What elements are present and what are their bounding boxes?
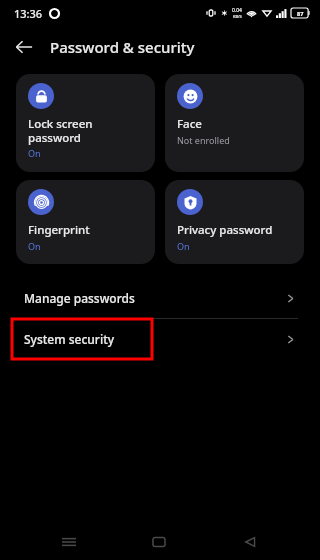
button[interactable]: Recents	[48, 524, 90, 560]
staticText: On	[177, 240, 190, 252]
staticText: 87	[297, 10, 304, 17]
staticText: Manage passwords	[24, 290, 135, 306]
staticText: Not enrolled	[177, 134, 230, 146]
staticText: Lock screen password	[28, 116, 93, 145]
button[interactable]: Privacy password	[165, 180, 304, 264]
staticText: Privacy password	[177, 222, 273, 238]
button[interactable]: Back	[229, 524, 271, 560]
button[interactable]: System security	[0, 319, 320, 359]
staticText: On	[28, 240, 41, 252]
staticText: Face	[177, 116, 202, 132]
staticText: 0.04	[232, 7, 242, 14]
staticText: On	[28, 147, 41, 159]
button[interactable]: Lock screen password	[16, 74, 155, 172]
button[interactable]: Back	[6, 29, 42, 65]
staticText: System security	[24, 331, 115, 347]
button[interactable]: Fingerprint	[16, 180, 155, 264]
staticText: Password & security	[50, 37, 195, 57]
staticText: ✶	[221, 9, 228, 18]
staticText: KB/S	[233, 14, 242, 19]
button[interactable]: Manage passwords	[0, 278, 320, 318]
button[interactable]: Face	[165, 74, 304, 172]
staticText: Fingerprint	[28, 222, 90, 238]
button[interactable]: Home	[138, 524, 180, 560]
staticText: 13:36	[14, 6, 43, 21]
